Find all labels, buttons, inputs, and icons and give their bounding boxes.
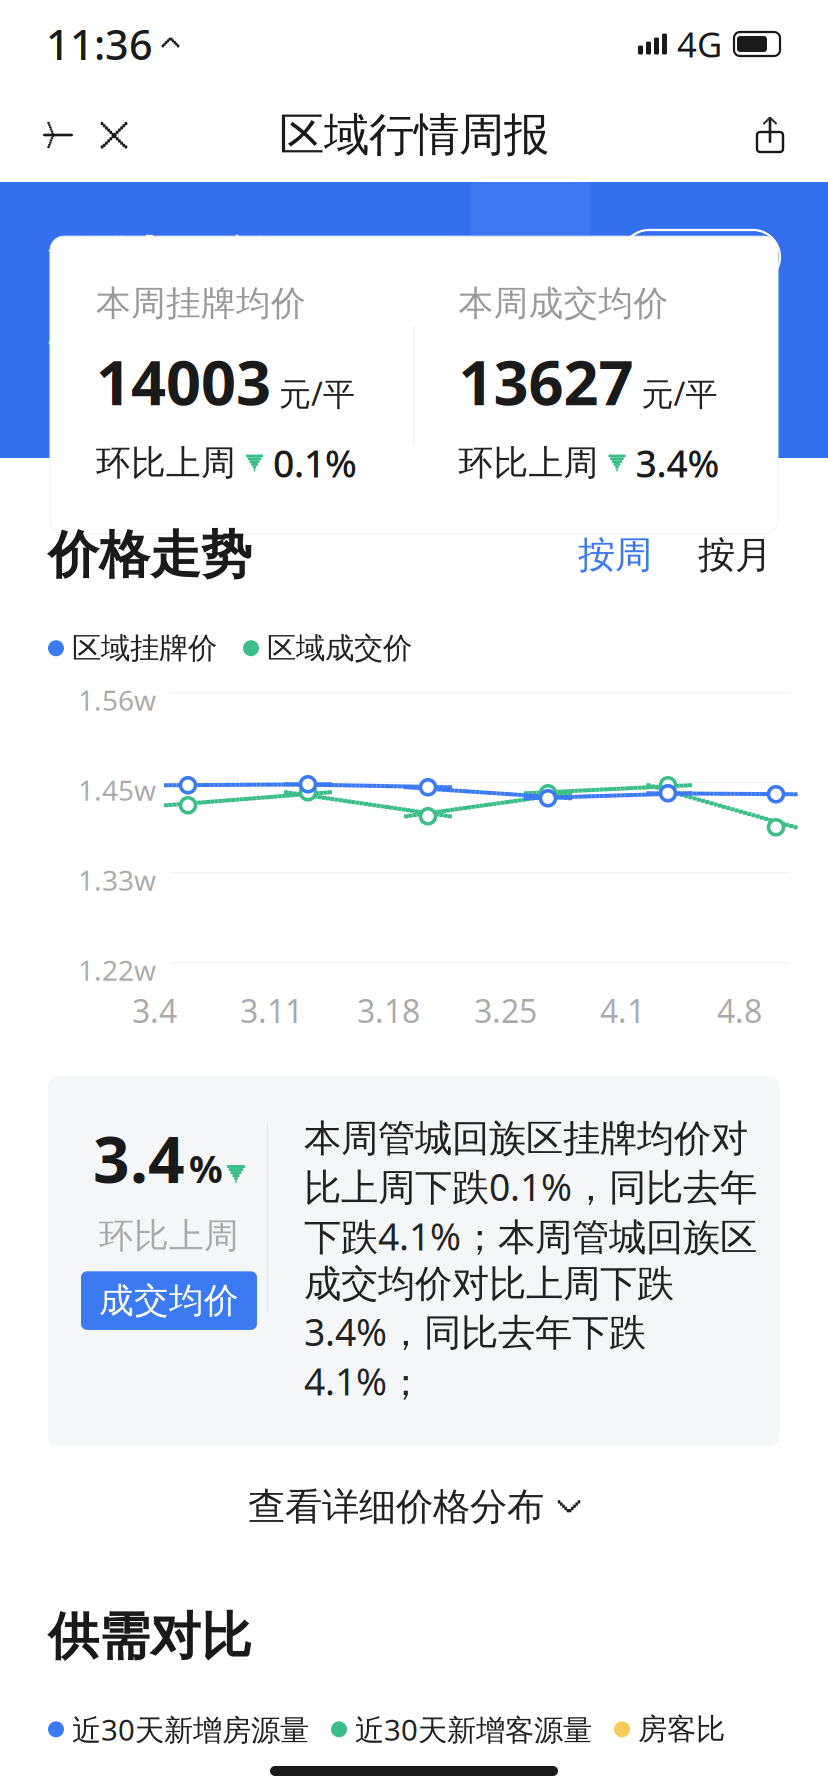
button[interactable]: Share <box>742 107 798 163</box>
staticText: 管城回族区 <box>48 230 343 302</box>
staticText: 3.25 <box>474 989 537 1032</box>
staticText: 近30天新增房源量 <box>72 1710 309 1749</box>
staticText: 3.18 <box>357 989 420 1032</box>
staticText: 本周管城回族区挂牌均价对比上周下跌0.1%，同比去年下跌4.1%；本周管城回族区… <box>304 1116 757 1406</box>
staticText: 供需对比 <box>48 1606 252 1668</box>
staticText: 4G <box>677 21 722 67</box>
staticText: 4.1 <box>600 989 645 1032</box>
staticText: 1.56w <box>78 681 156 718</box>
staticText: 区域行情周报 <box>279 107 549 163</box>
staticText: 已订阅 <box>647 235 755 279</box>
staticText: 0.1% <box>273 438 357 488</box>
staticText: 4月2日–4月8日 <box>48 316 264 359</box>
staticText: 1.22w <box>78 951 156 988</box>
staticText: 3.4 <box>93 1116 185 1201</box>
staticText: 成交均价 <box>99 1279 239 1322</box>
staticText: 查看详细价格分布 <box>248 1484 544 1530</box>
staticText: 3.11 <box>240 989 303 1032</box>
staticText: 14003 <box>96 341 271 422</box>
staticText: 元/平 <box>279 372 355 415</box>
staticText: 11:36 <box>46 17 153 71</box>
staticText: 每周五消息通知 <box>556 298 780 337</box>
staticText: 按周 <box>578 532 652 578</box>
staticText: 房客比 <box>638 1711 725 1747</box>
staticText: 13627 <box>458 341 633 422</box>
staticText: 按月 <box>698 532 772 578</box>
staticText: 区域成交价 <box>267 630 412 666</box>
button[interactable]: Back <box>30 107 86 163</box>
button[interactable]: 查看详细价格分布 <box>0 1468 828 1546</box>
staticText: 环比上周 <box>99 1215 239 1257</box>
staticText: 1.33w <box>78 861 156 898</box>
button[interactable]: 按月 <box>690 532 780 578</box>
staticText: 4.8 <box>717 989 762 1032</box>
staticText: 本周成交均价 <box>458 282 668 325</box>
staticText: 价格走势 <box>48 524 252 586</box>
button[interactable]: 管城回族区 <box>48 230 374 302</box>
staticText: 1.45w <box>78 771 156 808</box>
staticText: 3.4 <box>132 989 177 1032</box>
staticText: 环比上周 <box>96 442 236 484</box>
staticText: 环比上周 <box>458 442 598 484</box>
button[interactable]: 已订阅 <box>622 230 780 284</box>
staticText: 元/平 <box>641 372 717 415</box>
button[interactable]: 按周 <box>570 532 660 578</box>
staticText: % <box>189 1144 223 1193</box>
button[interactable]: Close <box>86 107 142 163</box>
staticText: 3.4% <box>635 438 719 488</box>
staticText: 近30天新增客源量 <box>355 1710 592 1749</box>
staticText: 本周挂牌均价 <box>96 282 306 325</box>
staticText: 区域挂牌价 <box>72 630 217 666</box>
